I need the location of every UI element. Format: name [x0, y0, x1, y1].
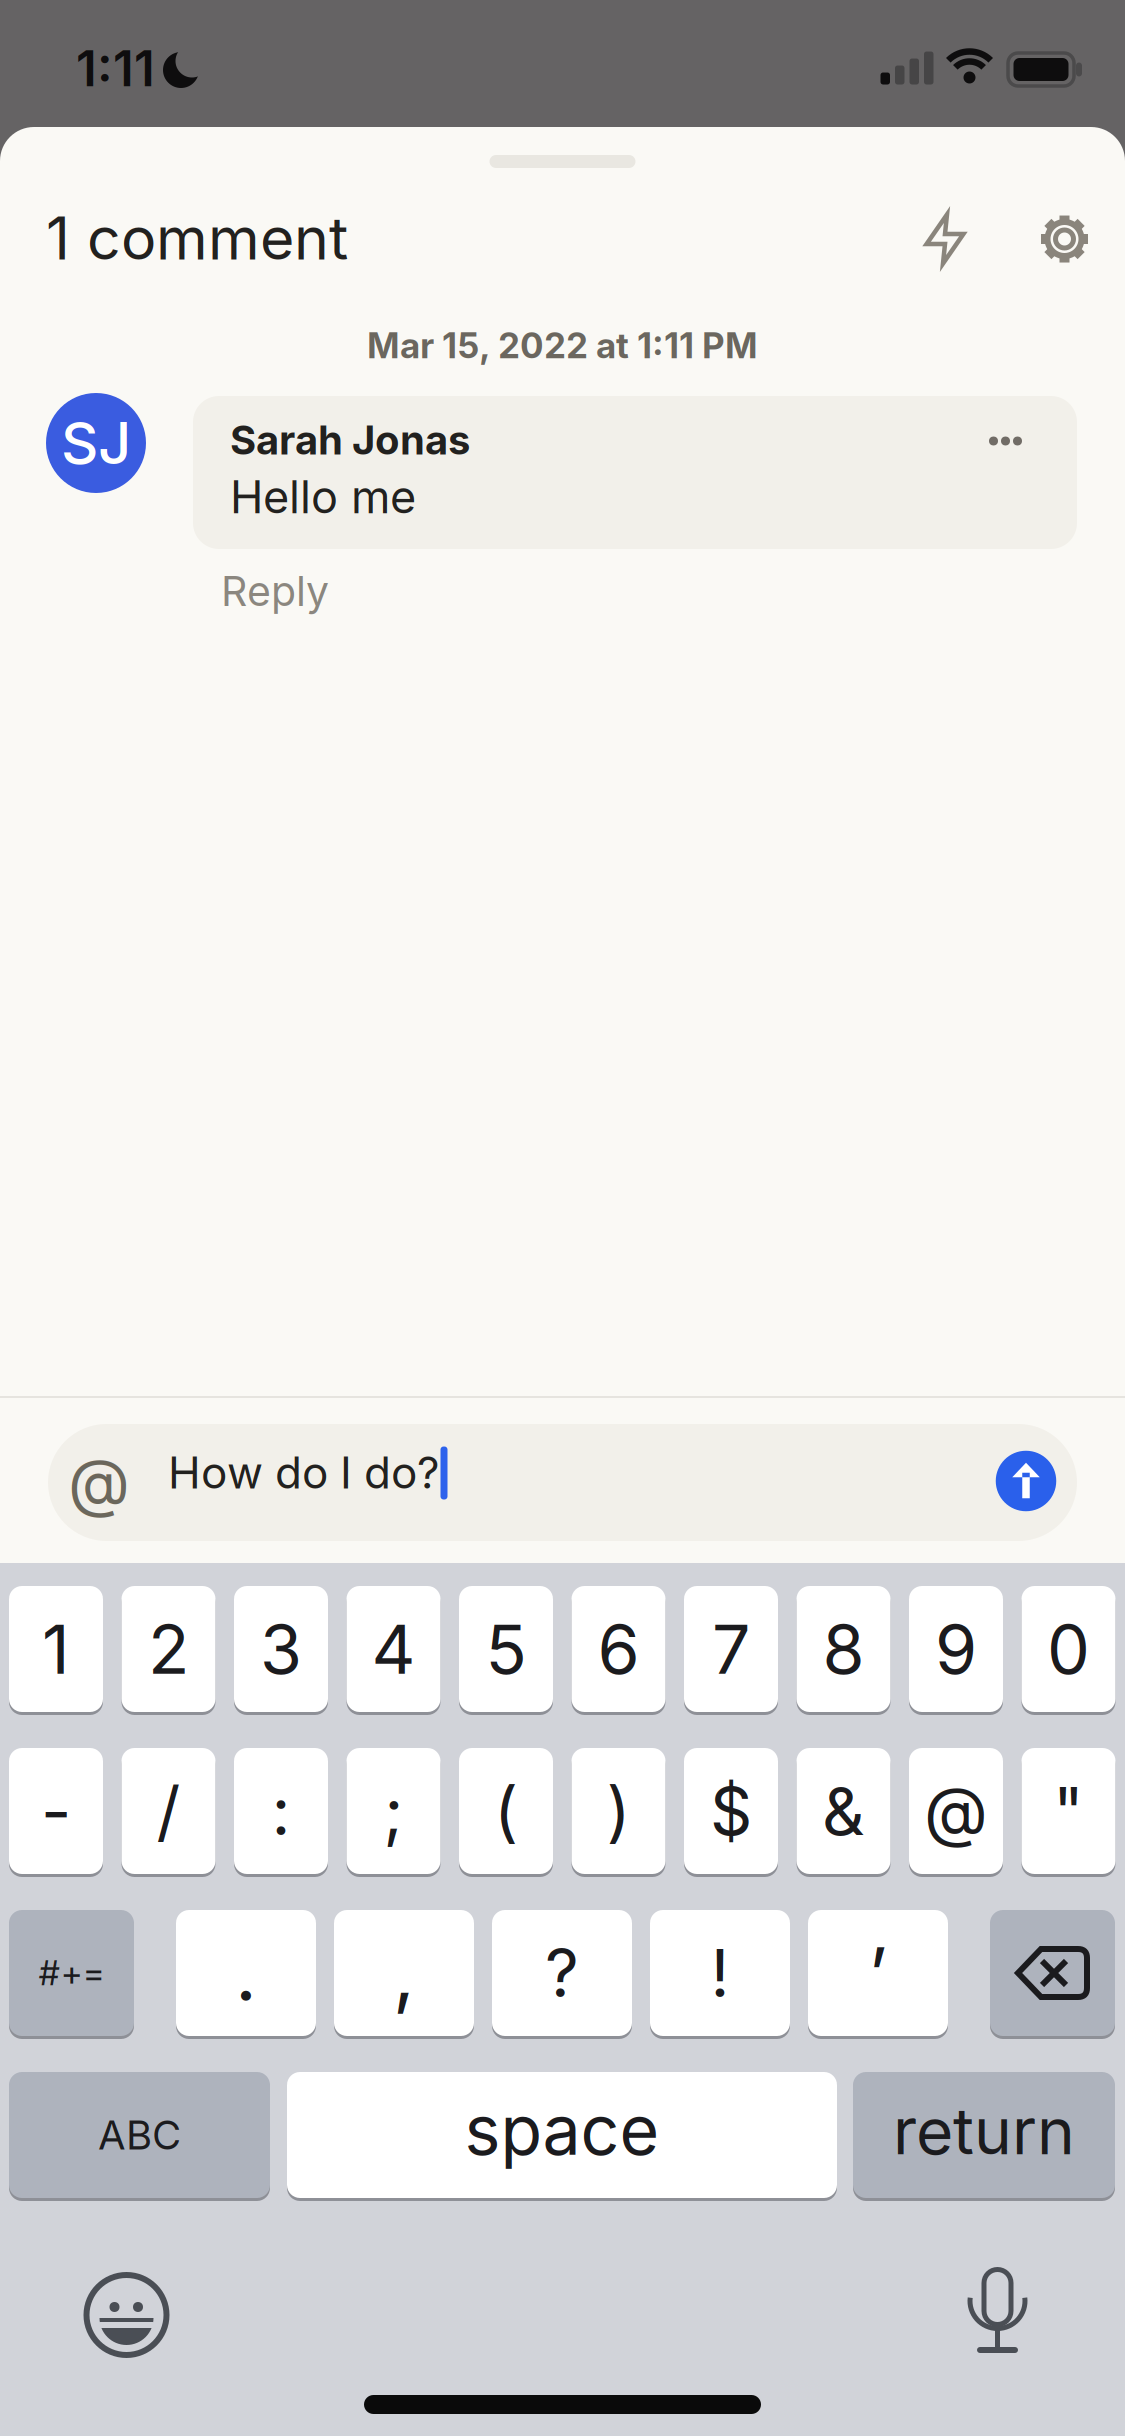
button[interactable]: Dictation	[947, 2260, 1047, 2360]
button[interactable]: Reply	[221, 567, 329, 615]
button[interactable]: $	[684, 1746, 778, 1875]
staticText: How do I do?	[168, 1446, 439, 1498]
staticText: -	[41, 1772, 71, 1850]
staticText: ;	[383, 1772, 403, 1850]
button[interactable]: ,	[334, 1908, 474, 2037]
button[interactable]: -	[9, 1746, 103, 1875]
staticText: .	[235, 1928, 257, 2018]
staticText: !	[710, 1934, 729, 2012]
staticText: 1 comment	[46, 203, 348, 273]
staticText: Sarah Jonas	[230, 416, 470, 464]
staticText: return	[893, 2093, 1075, 2169]
staticText: 7	[712, 1609, 750, 1689]
button[interactable]: )	[571, 1746, 665, 1875]
staticText: 1:11	[76, 40, 155, 97]
staticText: 2	[148, 1609, 189, 1689]
staticText: /	[156, 1772, 180, 1850]
button[interactable]: Delete	[990, 1908, 1115, 2037]
staticText: ,	[393, 1928, 415, 2018]
staticText: Reply	[221, 567, 329, 615]
button[interactable]: .	[176, 1908, 316, 2037]
button[interactable]: ’	[808, 1908, 948, 2037]
staticText: 5	[485, 1609, 526, 1689]
staticText: 6	[597, 1609, 639, 1689]
button[interactable]: More options	[970, 411, 1040, 471]
staticText: 1	[42, 1609, 70, 1689]
button[interactable]: ABC	[9, 2070, 270, 2199]
button[interactable]: 5	[459, 1584, 553, 1713]
staticText: Mar 15, 2022 at 1:11 PM	[367, 325, 758, 366]
staticText: Hello me	[230, 470, 416, 524]
button[interactable]: 7	[684, 1584, 778, 1713]
staticText: @	[924, 1772, 988, 1850]
button[interactable]: #+=	[9, 1908, 134, 2037]
staticText: 0	[1047, 1609, 1090, 1689]
staticText: 8	[822, 1609, 864, 1689]
button[interactable]: Settings	[1019, 194, 1109, 284]
button[interactable]: (	[459, 1746, 553, 1875]
button[interactable]: 0	[1021, 1584, 1115, 1713]
staticText: ABC	[98, 2111, 181, 2159]
staticText: space	[464, 2090, 659, 2170]
button[interactable]: /	[121, 1746, 215, 1875]
staticText: "	[1053, 1772, 1084, 1850]
staticText: $	[710, 1772, 752, 1850]
button[interactable]: "	[1021, 1746, 1115, 1875]
button[interactable]: @	[909, 1746, 1003, 1875]
staticText: :	[271, 1772, 290, 1850]
staticText: )	[606, 1772, 630, 1850]
button[interactable]: Quick actions	[900, 194, 990, 284]
button[interactable]: Mention	[59, 1442, 139, 1522]
staticText: 4	[371, 1609, 415, 1689]
staticText: (	[494, 1772, 518, 1850]
staticText: ’	[868, 1930, 887, 2015]
button[interactable]: return	[853, 2070, 1115, 2199]
staticText: ?	[545, 1934, 579, 2012]
staticText: @	[68, 1444, 130, 1520]
staticText: 9	[935, 1609, 977, 1689]
button[interactable]: Emoji	[76, 2265, 176, 2365]
staticText: SJ	[61, 409, 131, 477]
button[interactable]: ;	[346, 1746, 440, 1875]
button[interactable]: 4	[346, 1584, 440, 1713]
button[interactable]: 6	[571, 1584, 665, 1713]
button[interactable]: :	[234, 1746, 328, 1875]
button[interactable]: 2	[121, 1584, 215, 1713]
button[interactable]: &	[796, 1746, 890, 1875]
button[interactable]: space	[287, 2070, 837, 2199]
staticText: #+=	[38, 1953, 104, 1993]
button[interactable]: 8	[796, 1584, 890, 1713]
staticText: &	[822, 1772, 865, 1850]
staticText: 3	[260, 1609, 302, 1689]
button[interactable]: !	[650, 1908, 790, 2037]
button[interactable]: 9	[909, 1584, 1003, 1713]
button[interactable]: ?	[492, 1908, 632, 2037]
button[interactable]: 1	[9, 1584, 103, 1713]
button[interactable]: 3	[234, 1584, 328, 1713]
button[interactable]: Send	[996, 1451, 1056, 1511]
